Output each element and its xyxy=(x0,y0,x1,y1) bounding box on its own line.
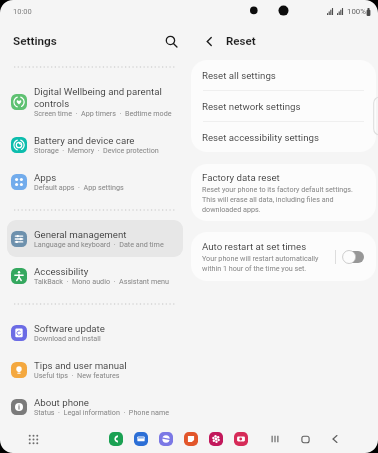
staticText: TalkBack · Mono audio · Assistant menu xyxy=(34,277,169,285)
button[interactable]: Tips and user manual xyxy=(7,351,183,388)
button[interactable]: Recents xyxy=(266,430,284,448)
button[interactable]: Internet xyxy=(159,432,173,446)
button[interactable]: Auto restart at set times xyxy=(191,232,376,281)
button[interactable]: Home xyxy=(296,430,314,448)
button[interactable]: Messages xyxy=(134,432,148,446)
button[interactable]: Reset network settings xyxy=(191,91,376,121)
staticText: Useful tips · New features xyxy=(34,371,120,379)
button[interactable]: Notes xyxy=(184,432,198,446)
staticText: Digital Wellbeing and parental controls xyxy=(34,86,162,109)
button[interactable]: Phone xyxy=(109,432,123,446)
staticText: General management xyxy=(34,229,127,240)
button[interactable]: Reset accessibility settings xyxy=(191,122,376,152)
staticText: Tips and user manual xyxy=(34,360,127,371)
button[interactable]: About phone xyxy=(7,388,183,425)
button[interactable]: Factory data reset xyxy=(191,164,376,221)
staticText: Screen time · App timers · Bedtime mode xyxy=(34,109,172,117)
button[interactable]: Accessibility xyxy=(7,257,183,294)
button[interactable]: Back xyxy=(198,30,220,52)
staticText: Reset network settings xyxy=(202,101,301,112)
button[interactable]: Gallery xyxy=(209,432,223,446)
staticText: Status · Legal information · Phone name xyxy=(34,408,170,416)
staticText: Storage · Memory · Device protection xyxy=(34,146,159,154)
button[interactable]: Apps xyxy=(7,163,183,200)
staticText: Language and keyboard · Date and time xyxy=(34,240,164,248)
staticText: Accessibility xyxy=(34,266,89,277)
staticText: Reset your phone to its factory default … xyxy=(202,185,353,213)
button[interactable]: Reset all settings xyxy=(191,60,376,90)
button[interactable]: Camera xyxy=(234,432,248,446)
staticText: Download and install xyxy=(34,334,101,342)
staticText: Apps xyxy=(34,172,57,183)
staticText: Software update xyxy=(34,323,105,334)
staticText: Reset all settings xyxy=(202,70,276,81)
button[interactable]: Search xyxy=(159,29,183,53)
staticText: Auto restart at set times xyxy=(202,241,307,252)
staticText: 10:00 xyxy=(13,7,32,16)
staticText: About phone xyxy=(34,397,89,408)
staticText: Factory data reset xyxy=(202,172,280,183)
button[interactable]: Battery and device care xyxy=(7,126,183,163)
staticText: 100% xyxy=(347,7,366,16)
staticText: Reset xyxy=(226,34,256,47)
button[interactable]: General management xyxy=(7,220,183,257)
button[interactable]: Digital Wellbeing and parental controls xyxy=(7,77,183,126)
button[interactable]: Auto restart toggle xyxy=(343,250,364,264)
staticText: Reset accessibility settings xyxy=(202,132,320,143)
staticText: Default apps · App settings xyxy=(34,183,124,191)
button[interactable]: All apps xyxy=(24,430,42,448)
staticText: Battery and device care xyxy=(34,135,135,146)
staticText: Your phone will restart automatically wi… xyxy=(202,254,319,272)
staticText: Settings xyxy=(13,34,57,48)
button[interactable]: Software update xyxy=(7,314,183,351)
button[interactable]: Back xyxy=(326,430,344,448)
